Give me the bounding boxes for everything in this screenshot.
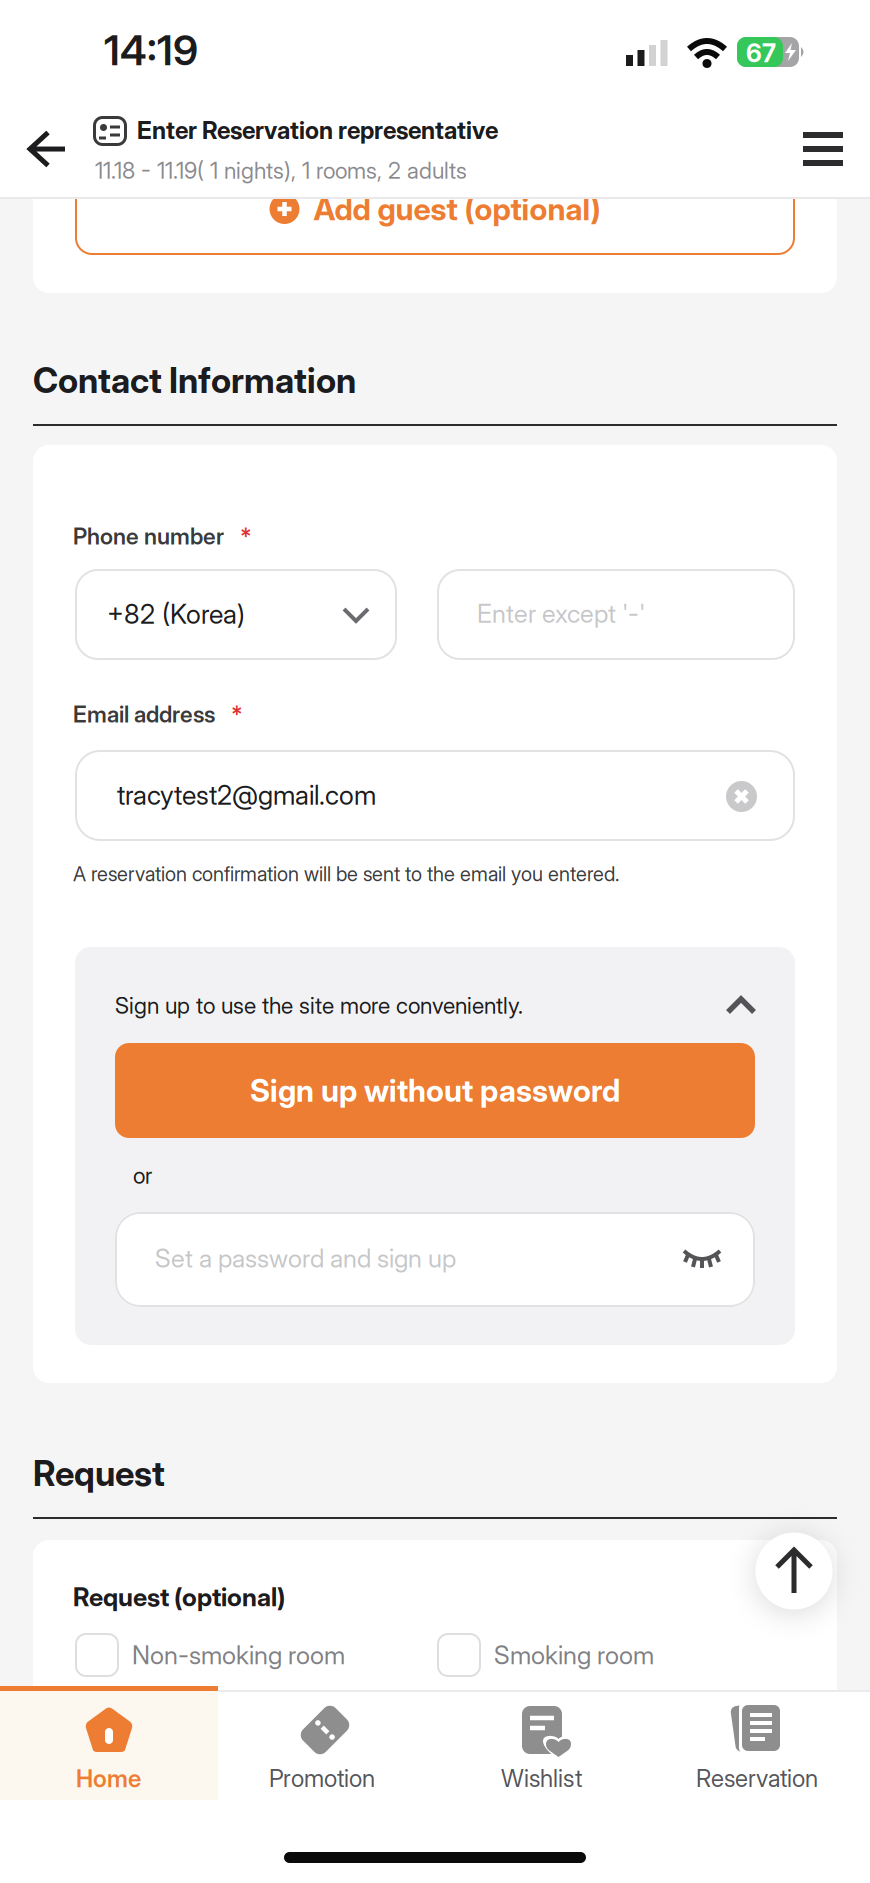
staticText: 11.18 - 11.19( 1 nights), 1 rooms, 2 adu… [95, 157, 467, 184]
staticText: Reservation [696, 1764, 818, 1792]
staticText: Sign up without password [250, 1072, 620, 1109]
button[interactable]: Sign up without password [115, 1043, 755, 1138]
staticText: Request (optional) [73, 1582, 285, 1612]
button[interactable]: Promotion [217, 1686, 434, 1800]
button[interactable]: Wishlist [434, 1686, 651, 1800]
button[interactable]: Back [27, 130, 67, 168]
button[interactable]: Show password [683, 1248, 721, 1272]
staticText: Smoking room [494, 1640, 654, 1670]
staticText: Enter Reservation representative [137, 116, 498, 144]
staticText: Home [76, 1764, 141, 1793]
staticText: Set a password and sign up [155, 1243, 456, 1273]
staticText: +82 (Korea) [107, 598, 245, 630]
staticText: * [240, 523, 252, 550]
button[interactable]: Smoking room [437, 1633, 654, 1677]
staticText: Add guest (optional) [313, 191, 600, 227]
staticText: or [133, 1162, 152, 1189]
staticText: Sign up to use the site more convenientl… [115, 992, 523, 1019]
staticText: A reservation confirmation will be sent … [73, 862, 619, 886]
staticText: Phone number [73, 523, 224, 550]
button[interactable]: Menu [803, 132, 843, 166]
staticText: Email address [73, 701, 215, 728]
button[interactable]: Collapse [727, 997, 755, 1014]
staticText: Wishlist [501, 1764, 582, 1792]
staticText: 67 [746, 38, 776, 68]
button[interactable]: Reservation [651, 1686, 868, 1800]
staticText: Non-smoking room [132, 1640, 345, 1670]
staticText: Promotion [269, 1764, 375, 1792]
staticText: Enter except '-' [477, 599, 645, 629]
staticText: Contact Information [33, 360, 356, 401]
staticText: Request [33, 1453, 165, 1494]
button[interactable]: Clear email [726, 781, 757, 812]
button[interactable]: +82 (Korea) [75, 569, 397, 660]
button[interactable]: Add guest (optional) [75, 163, 795, 255]
staticText: tracytest2@gmail.com [117, 779, 376, 811]
button[interactable]: Home [0, 1686, 218, 1800]
staticText: * [231, 701, 243, 728]
button[interactable]: Non-smoking room [75, 1633, 345, 1677]
button[interactable]: Scroll to top [755, 1532, 832, 1609]
staticText: 14:19 [104, 26, 198, 75]
